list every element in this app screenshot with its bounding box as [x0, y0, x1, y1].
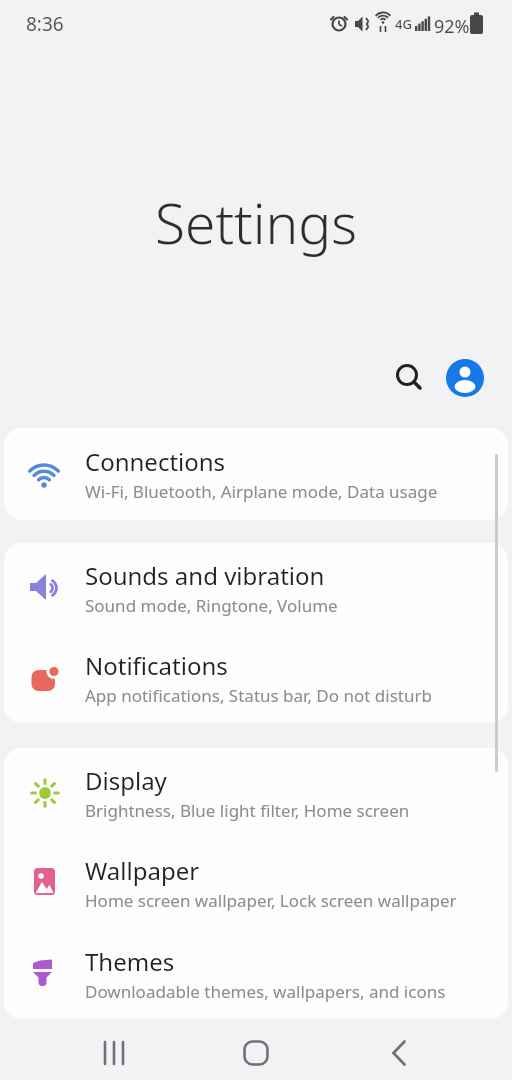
staticText: Notifications	[85, 649, 228, 682]
button[interactable]: Notifications	[4, 633, 508, 723]
staticText: 92%	[434, 14, 470, 39]
staticText: Wi-Fi, Bluetooth, Airplane mode, Data us…	[85, 480, 438, 503]
button[interactable]: Display	[4, 748, 508, 838]
button[interactable]: Themes	[4, 928, 508, 1019]
staticText: Display	[85, 764, 167, 797]
staticText: Settings	[155, 185, 357, 260]
staticText: Sound mode, Ringtone, Volume	[85, 594, 338, 617]
staticText: Sounds and vibration	[85, 559, 325, 592]
staticText: Home screen wallpaper, Lock screen wallp…	[85, 889, 457, 912]
staticText: App notifications, Status bar, Do not di…	[85, 684, 432, 707]
button[interactable]: Wallpaper	[4, 838, 508, 928]
staticText: 4G	[395, 15, 412, 33]
staticText: Wallpaper	[85, 854, 200, 887]
button[interactable]: Sounds and vibration	[4, 543, 508, 633]
button[interactable]	[388, 357, 430, 399]
button[interactable]	[377, 1036, 421, 1070]
staticText: 8:36	[26, 11, 64, 37]
button[interactable]	[92, 1036, 136, 1070]
staticText: Connections	[85, 445, 226, 478]
button[interactable]	[234, 1036, 278, 1070]
staticText: Downloadable themes, wallpapers, and ico…	[85, 980, 446, 1003]
staticText: Themes	[85, 945, 175, 978]
button[interactable]: Connections	[4, 428, 508, 520]
staticText: Brightness, Blue light filter, Home scre…	[85, 799, 410, 822]
button[interactable]	[446, 359, 484, 397]
